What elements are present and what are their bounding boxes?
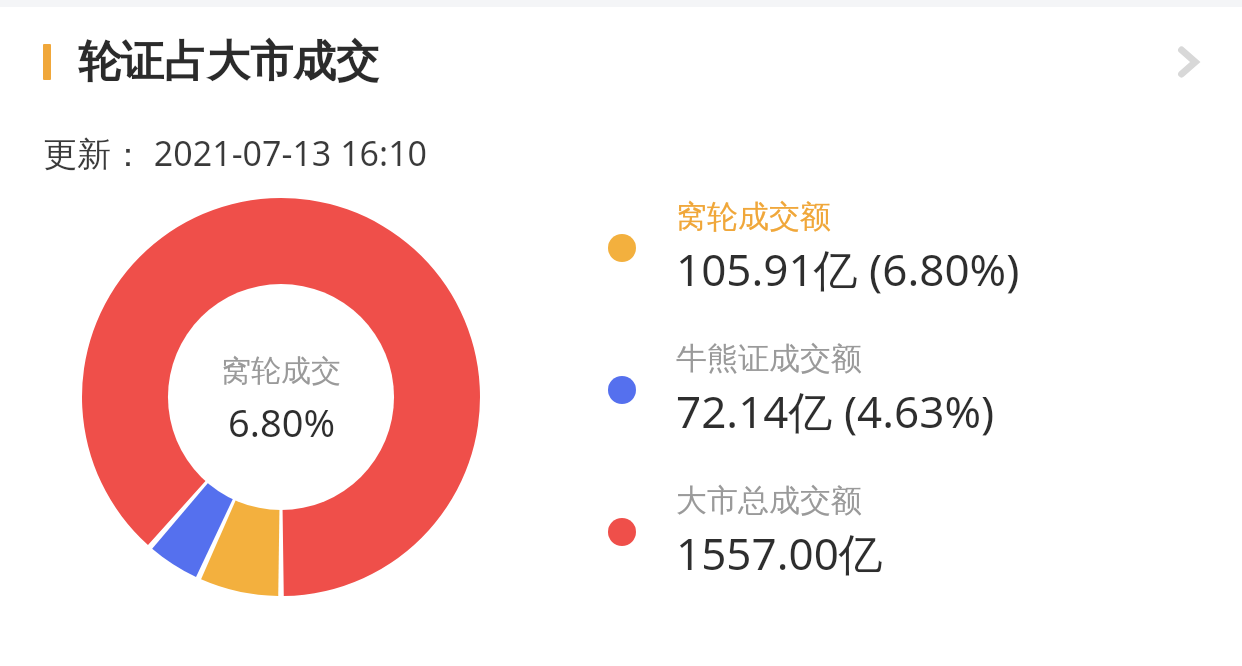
button[interactable]: 大市总成交额 bbox=[608, 472, 1208, 592]
staticText: 窝轮成交额 bbox=[676, 197, 831, 236]
staticText: 牛熊证成交额 bbox=[676, 339, 862, 378]
staticText: 大市总成交额 bbox=[676, 481, 862, 520]
staticText: 轮证占大市成交 bbox=[78, 35, 379, 89]
staticText: 窝轮成交 bbox=[221, 352, 341, 390]
button[interactable]: More details bbox=[1160, 34, 1216, 90]
staticText: 72.14亿 (4.63%) bbox=[676, 381, 995, 441]
button[interactable]: 窝轮成交额 bbox=[608, 188, 1208, 308]
button[interactable]: 轮证占大市成交 bbox=[0, 7, 1242, 117]
staticText: 1557.00亿 bbox=[676, 523, 883, 583]
staticText: 105.91亿 (6.80%) bbox=[676, 239, 1020, 299]
button[interactable]: 牛熊证成交额 bbox=[608, 330, 1208, 450]
staticText: 更新： 2021-07-13 16:10 bbox=[43, 130, 428, 176]
staticText: 6.80% bbox=[228, 396, 335, 448]
